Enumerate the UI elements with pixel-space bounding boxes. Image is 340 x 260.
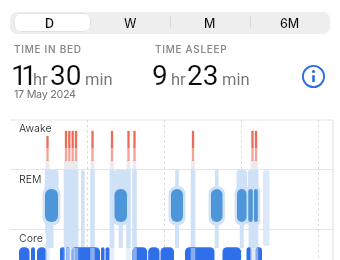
button[interactable]: 6M xyxy=(250,12,330,34)
staticText: min xyxy=(222,70,250,89)
staticText: Core xyxy=(19,232,43,245)
button[interactable]: W xyxy=(90,12,170,34)
button[interactable] xyxy=(302,65,325,88)
staticText: min xyxy=(85,70,113,89)
staticText: 6M xyxy=(280,16,300,31)
staticText: D xyxy=(45,16,55,31)
staticText: 9 xyxy=(152,59,168,92)
staticText: TIME IN BED xyxy=(14,43,82,55)
staticText: hr xyxy=(33,70,48,89)
staticText: REM xyxy=(19,173,42,186)
button[interactable]: M xyxy=(170,12,250,34)
staticText: 30 xyxy=(50,59,82,92)
staticText: TIME ASLEEP xyxy=(155,43,228,55)
staticText: 17 May 2024 xyxy=(14,88,76,101)
staticText: 11 xyxy=(11,59,32,92)
staticText: 23 xyxy=(187,59,219,92)
staticText: hr xyxy=(171,70,186,89)
button[interactable]: D xyxy=(10,12,90,34)
staticText: W xyxy=(124,16,137,31)
staticText: Awake xyxy=(19,122,52,135)
staticText: M xyxy=(204,16,216,31)
